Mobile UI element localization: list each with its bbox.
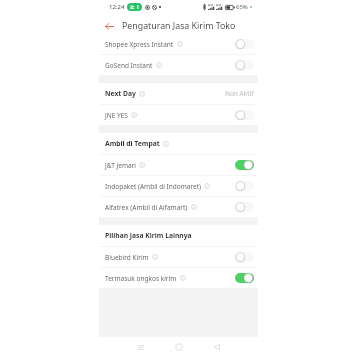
button[interactable]: Pilihan Jasa Kirim Lainnya <box>99 225 258 246</box>
button[interactable]: Switch on <box>235 273 254 283</box>
button[interactable]: Next Day <box>99 83 258 104</box>
button[interactable]: Shopee Xpress Instant <box>99 34 258 54</box>
staticText: J&T Jemari <box>105 161 136 170</box>
button[interactable]: GoSend Instant <box>99 55 258 75</box>
staticText: Termasuk ongkos kirim <box>105 274 177 283</box>
button[interactable]: Switch off <box>235 110 254 120</box>
staticText: Alfatrex (Ambil di Alfamart) <box>105 203 188 212</box>
button[interactable]: Switch on <box>235 160 254 170</box>
button[interactable]: Back <box>198 338 236 356</box>
staticText: Pengaturan Jasa Kirim Toko <box>122 20 236 32</box>
staticText: Next Day <box>105 89 136 98</box>
staticText: Non Aktif <box>225 89 254 98</box>
button[interactable]: Switch off <box>235 181 254 191</box>
button[interactable]: Switch off <box>235 252 254 262</box>
staticText: 12:24 <box>109 3 125 11</box>
staticText: Ambil di Tempat <box>105 139 160 148</box>
staticText: GoSend Instant <box>105 61 153 70</box>
button[interactable]: Indopaket (Ambil di Indomaret) <box>99 176 258 196</box>
button[interactable]: J&T Jemari <box>99 155 258 175</box>
button[interactable]: Switch off <box>235 60 254 70</box>
staticText: Indopaket (Ambil di Indomaret) <box>105 182 201 191</box>
button[interactable]: Recent apps <box>122 338 160 356</box>
staticText: JNE YES <box>105 111 128 120</box>
staticText: Bluebird Kirim <box>105 253 149 262</box>
button[interactable]: Home <box>160 338 198 356</box>
button[interactable]: Alfatrex (Ambil di Alfamart) <box>99 197 258 217</box>
button[interactable]: Bluebird Kirim <box>99 247 258 267</box>
button[interactable]: JNE YES <box>99 105 258 125</box>
staticText: 65% <box>236 3 248 11</box>
button[interactable]: Termasuk ongkos kirim <box>99 268 258 288</box>
button[interactable]: Switch off <box>235 202 254 212</box>
staticText: Pilihan Jasa Kirim Lainnya <box>105 231 192 240</box>
button[interactable]: Ambil di Tempat <box>99 133 258 154</box>
staticText: Shopee Xpress Instant <box>105 40 174 49</box>
button[interactable]: Back <box>101 18 117 34</box>
button[interactable]: Switch off <box>235 39 254 49</box>
